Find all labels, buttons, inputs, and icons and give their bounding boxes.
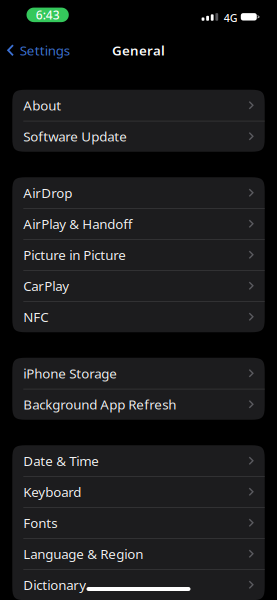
button[interactable]: iPhone Storage <box>12 358 265 389</box>
staticText: Background App Refresh <box>23 395 176 413</box>
button[interactable]: Date & Time <box>12 445 265 476</box>
staticText: Dictionary <box>23 576 86 594</box>
staticText: iPhone Storage <box>23 364 117 382</box>
staticText: NFC <box>23 308 48 326</box>
button[interactable]: Fonts <box>12 507 265 538</box>
button[interactable]: Picture in Picture <box>12 239 265 270</box>
staticText: Picture in Picture <box>23 246 126 264</box>
staticText: Software Update <box>23 127 127 145</box>
button[interactable]: CarPlay <box>12 270 265 301</box>
staticText: About <box>23 96 61 114</box>
staticText: Keyboard <box>23 483 81 501</box>
button[interactable]: Settings <box>0 35 70 65</box>
staticText: Settings <box>20 41 70 59</box>
staticText: General <box>112 41 165 59</box>
button[interactable]: Dictionary <box>12 569 265 600</box>
staticText: Date & Time <box>23 452 99 470</box>
staticText: AirPlay & Handoff <box>23 215 132 233</box>
button[interactable]: Background App Refresh <box>12 389 265 420</box>
button[interactable]: About <box>12 90 265 121</box>
button[interactable]: Software Update <box>12 121 265 152</box>
staticText: Fonts <box>23 514 57 532</box>
staticText: 6:43 <box>36 7 60 23</box>
button[interactable]: AirPlay & Handoff <box>12 208 265 239</box>
staticText: 4G <box>224 11 238 25</box>
staticText: Language & Region <box>23 545 143 563</box>
staticText: AirDrop <box>23 184 72 202</box>
button[interactable]: Keyboard <box>12 476 265 507</box>
staticText: CarPlay <box>23 277 69 295</box>
button[interactable]: Language & Region <box>12 538 265 569</box>
button[interactable]: AirDrop <box>12 177 265 208</box>
button[interactable]: NFC <box>12 301 265 332</box>
